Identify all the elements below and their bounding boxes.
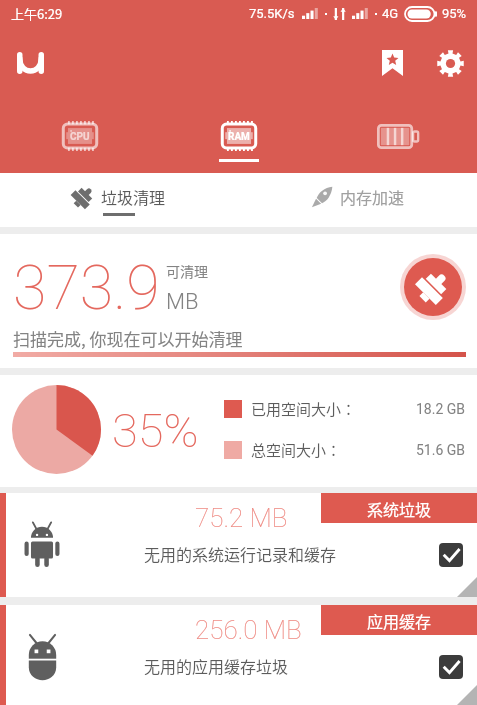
- staticText: 18.2 GB: [416, 401, 466, 417]
- staticText: 51.6 GB: [416, 442, 466, 458]
- button[interactable]: 系统垃圾: [321, 493, 477, 523]
- staticText: 可清理: [166, 261, 208, 281]
- button[interactable]: Battery: [318, 88, 477, 173]
- staticText: 无用的应用缓存垃圾: [144, 654, 289, 677]
- button[interactable]: 256.0 MB: [0, 605, 477, 705]
- button[interactable]: Clean: [404, 258, 462, 316]
- button[interactable]: Select item: [439, 655, 463, 679]
- button[interactable]: 内存加速: [238, 173, 477, 227]
- staticText: 扫描完成, 你现在可以开始清理: [13, 326, 243, 351]
- staticText: 应用缓存: [367, 609, 432, 632]
- staticText: CPU: [70, 131, 90, 143]
- staticText: 75.5K/s: [249, 6, 295, 21]
- staticText: 已用空间大小：: [251, 398, 357, 420]
- staticText: 256.0 MB: [195, 615, 302, 645]
- staticText: 373.9: [13, 252, 160, 323]
- button[interactable]: 应用缓存: [321, 605, 477, 635]
- button[interactable]: Select item: [439, 543, 463, 567]
- staticText: 上午6:29: [11, 4, 63, 23]
- staticText: 总空间大小：: [251, 439, 342, 461]
- staticText: 35%: [112, 403, 199, 458]
- button[interactable]: Menu: [8, 41, 52, 85]
- staticText: 无用的系统运行记录和缓存: [144, 542, 337, 565]
- button[interactable]: Favorites: [370, 41, 414, 85]
- staticText: MB: [166, 289, 199, 315]
- staticText: 4G: [382, 6, 399, 21]
- button[interactable]: CPU: [0, 88, 159, 173]
- staticText: 内存加速: [340, 185, 405, 208]
- button[interactable]: 75.2 MB: [0, 493, 477, 597]
- staticText: 垃圾清理: [101, 185, 166, 208]
- button[interactable]: Settings: [428, 41, 472, 85]
- staticText: RAM: [228, 131, 250, 143]
- button[interactable]: RAM: [159, 88, 318, 173]
- button[interactable]: 垃圾清理: [0, 173, 238, 227]
- staticText: 95%: [442, 6, 467, 21]
- staticText: 75.2 MB: [195, 503, 288, 533]
- staticText: 系统垃圾: [367, 497, 432, 520]
